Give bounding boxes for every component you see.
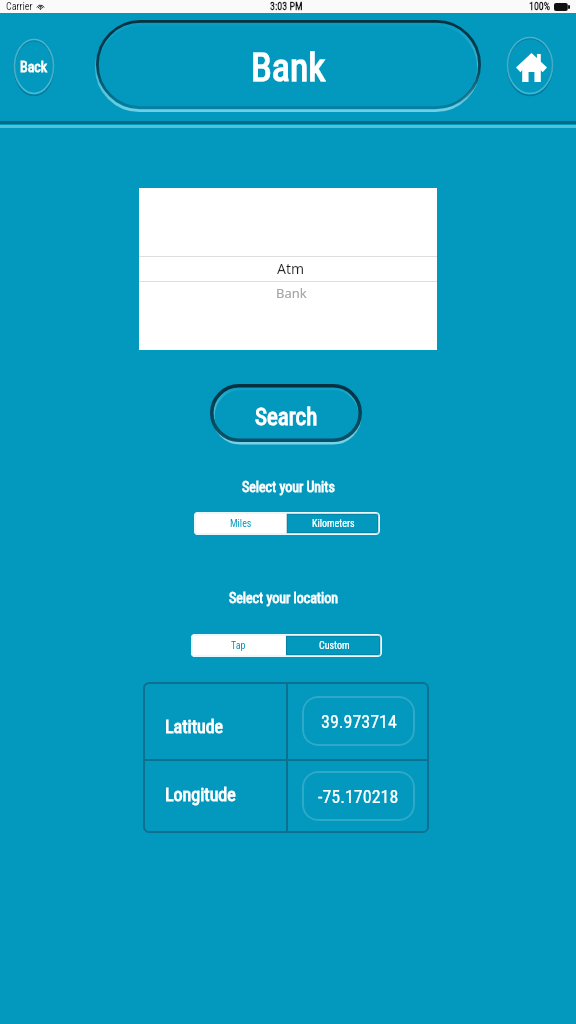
staticText: Longitude: [165, 784, 236, 805]
button[interactable]: Search: [210, 384, 362, 448]
staticText: Custom: [319, 640, 350, 652]
button[interactable]: Back: [13, 38, 55, 96]
staticText: Bank: [251, 46, 326, 91]
button[interactable]: -75.170218: [302, 771, 415, 821]
button[interactable]: Kilometers: [287, 512, 380, 535]
button[interactable]: 39.973714: [302, 696, 415, 746]
staticText: Select your Units: [242, 479, 335, 495]
staticText: Bank: [276, 284, 307, 302]
staticText: Atm: [277, 259, 305, 278]
staticText: Miles: [230, 518, 252, 530]
button[interactable]: Custom: [286, 634, 382, 657]
staticText: 39.973714: [321, 711, 397, 732]
staticText: Back: [20, 59, 48, 75]
staticText: Carrier: [6, 1, 33, 13]
staticText: 100%: [529, 1, 551, 13]
button[interactable]: Miles: [194, 512, 287, 535]
button[interactable]: Tap: [191, 634, 286, 657]
staticText: Kilometers: [312, 518, 355, 530]
staticText: Search: [255, 404, 318, 431]
button[interactable]: Home: [506, 36, 554, 96]
staticText: Select your location: [229, 590, 338, 606]
staticText: -75.170218: [318, 786, 399, 807]
staticText: Latitude: [165, 716, 224, 737]
staticText: Tap: [231, 640, 246, 652]
staticText: 3:03 PM: [270, 1, 303, 13]
